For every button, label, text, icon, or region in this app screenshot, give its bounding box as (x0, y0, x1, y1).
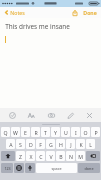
button[interactable]: Z (16, 151, 25, 161)
button[interactable]: Checklist (5, 108, 19, 122)
staticText: G (49, 141, 53, 148)
button[interactable]: Q (1, 127, 10, 137)
staticText: This drives me insane (5, 22, 70, 31)
staticText: P (94, 129, 98, 136)
staticText: Notes (10, 9, 25, 16)
staticText: D (29, 141, 33, 148)
button[interactable]: J (66, 139, 75, 149)
staticText: K (79, 141, 83, 148)
button[interactable]: R (31, 127, 40, 137)
staticText: I (75, 129, 77, 136)
staticText: Y (54, 129, 57, 136)
button[interactable]: done (78, 163, 100, 173)
staticText: C (39, 153, 43, 160)
staticText: J (70, 141, 72, 148)
staticText: R (34, 129, 38, 136)
staticText: F (39, 141, 42, 148)
staticText: Q (3, 129, 8, 136)
staticText: Z (19, 153, 22, 160)
staticText: E (24, 129, 27, 136)
staticText: M (78, 153, 83, 160)
button[interactable]: C (36, 151, 45, 161)
staticText: 123 (4, 166, 11, 171)
button[interactable]: I (71, 127, 80, 137)
staticText: W (13, 129, 18, 136)
button[interactable]: Text format (24, 108, 38, 122)
button[interactable]: E (21, 127, 30, 137)
button[interactable]: Switch keyboard (14, 163, 24, 173)
button[interactable]: Notes (3, 8, 26, 17)
staticText: O (83, 129, 88, 136)
staticText: V (49, 153, 53, 160)
button[interactable]: 123 (1, 163, 13, 173)
button[interactable]: L (86, 139, 95, 149)
button[interactable]: W (11, 127, 20, 137)
button[interactable]: M (76, 151, 85, 161)
button[interactable]: Close (82, 108, 96, 122)
button[interactable]: B (56, 151, 65, 161)
button[interactable]: Share (71, 9, 79, 17)
staticText: U (64, 129, 68, 136)
staticText: space (51, 166, 62, 171)
button[interactable]: Dictate (25, 163, 35, 173)
button[interactable]: O (81, 127, 90, 137)
button[interactable]: Done (82, 8, 98, 17)
button[interactable]: space (36, 163, 77, 173)
button[interactable]: F (36, 139, 45, 149)
staticText: S (19, 141, 22, 148)
staticText: B (59, 153, 63, 160)
button[interactable]: N (66, 151, 75, 161)
button[interactable]: H (56, 139, 65, 149)
staticText: A (9, 141, 13, 148)
staticText: X (29, 153, 33, 160)
staticText: done (84, 166, 94, 171)
button[interactable]: T (41, 127, 50, 137)
button[interactable]: Shift (1, 151, 15, 161)
button[interactable]: G (46, 139, 55, 149)
staticText: N (69, 153, 73, 160)
staticText: T (44, 129, 47, 136)
button[interactable]: S (16, 139, 25, 149)
staticText: H (59, 141, 63, 148)
button[interactable]: V (46, 151, 55, 161)
button[interactable]: P (91, 127, 100, 137)
button[interactable]: Backspace (86, 151, 100, 161)
staticText: Done (83, 9, 97, 16)
button[interactable]: Y (51, 127, 60, 137)
staticText: L (89, 141, 92, 148)
button[interactable]: D (26, 139, 35, 149)
button[interactable]: K (76, 139, 85, 149)
button[interactable]: Markup (63, 108, 77, 122)
button[interactable]: U (61, 127, 70, 137)
button[interactable]: X (26, 151, 35, 161)
button[interactable]: Camera (44, 108, 58, 122)
button[interactable]: A (6, 139, 15, 149)
